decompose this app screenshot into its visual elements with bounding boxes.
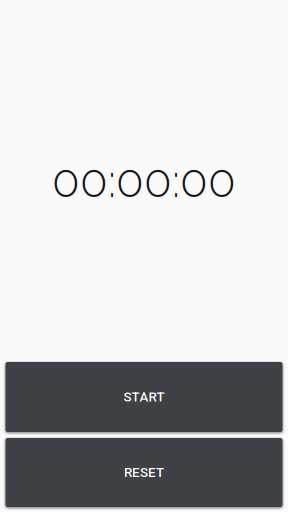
staticText: 00:00:00 (52, 154, 236, 208)
button[interactable]: START (5, 362, 282, 432)
button[interactable]: RESET (5, 438, 282, 507)
staticText: START (123, 389, 164, 405)
staticText: RESET (124, 465, 164, 480)
